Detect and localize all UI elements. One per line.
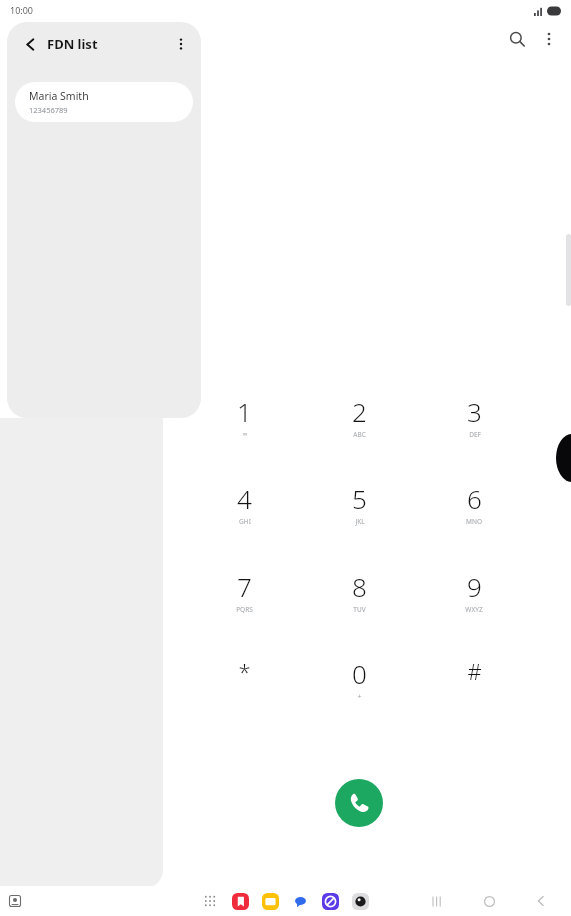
staticText: 6 (467, 481, 482, 516)
staticText: DEF (469, 430, 481, 439)
staticText: TUV (353, 605, 366, 614)
button[interactable]: Samsung Notes (229, 890, 251, 912)
button[interactable]: My Files (259, 890, 281, 912)
button[interactable]: Capture (4, 890, 26, 912)
staticText: ABC (353, 430, 366, 439)
button[interactable]: 9 (428, 569, 520, 647)
staticText: Maria Smith (29, 89, 89, 103)
button[interactable]: Back (529, 889, 553, 913)
staticText: 123456789 (29, 105, 68, 115)
button[interactable]: Internet (319, 890, 341, 912)
staticText: JKL (355, 517, 365, 526)
staticText: 2 (352, 394, 367, 429)
button[interactable]: More options (534, 24, 564, 54)
staticText: + (357, 692, 362, 702)
staticText: 4 (237, 481, 252, 516)
button[interactable]: 3 (428, 394, 520, 472)
staticText: MNO (466, 517, 482, 526)
staticText: # (467, 656, 482, 686)
button[interactable]: 7 (198, 569, 290, 647)
button[interactable]: # (428, 656, 520, 734)
staticText: 8 (352, 569, 367, 604)
button[interactable]: Search (500, 22, 534, 56)
staticText: WXYZ (465, 605, 483, 614)
staticText: GHI (239, 517, 251, 526)
staticText: 7 (237, 569, 252, 604)
staticText: 9 (467, 569, 482, 604)
button[interactable]: 4 (198, 481, 290, 559)
button[interactable]: 5 (313, 481, 405, 559)
staticText: 0 (352, 656, 367, 691)
button[interactable]: Apps (199, 890, 221, 912)
button[interactable]: Camera (349, 890, 371, 912)
staticText: 1 (237, 394, 252, 429)
staticText: ∞ (242, 430, 248, 438)
button[interactable]: Home (477, 889, 501, 913)
button[interactable]: 8 (313, 569, 405, 647)
button[interactable]: Back (15, 29, 45, 59)
button[interactable]: More options (168, 31, 194, 57)
button[interactable]: 6 (428, 481, 520, 559)
staticText: 5 (352, 481, 367, 516)
staticText: * (238, 656, 251, 686)
staticText: 3 (467, 394, 482, 429)
staticText: 10:00 (10, 4, 34, 16)
button[interactable]: 0 (313, 656, 405, 734)
button[interactable]: Recent apps (425, 889, 449, 913)
button[interactable]: Maria Smith (15, 82, 193, 122)
staticText: FDN list (47, 35, 98, 53)
other: Edge panel handle (556, 434, 571, 482)
button[interactable]: 2 (313, 394, 405, 472)
button[interactable]: * (198, 656, 290, 734)
button[interactable]: Call (335, 779, 383, 827)
button[interactable]: Messages (289, 890, 311, 912)
staticText: PQRS (236, 605, 253, 614)
button[interactable]: 1 (198, 394, 290, 472)
